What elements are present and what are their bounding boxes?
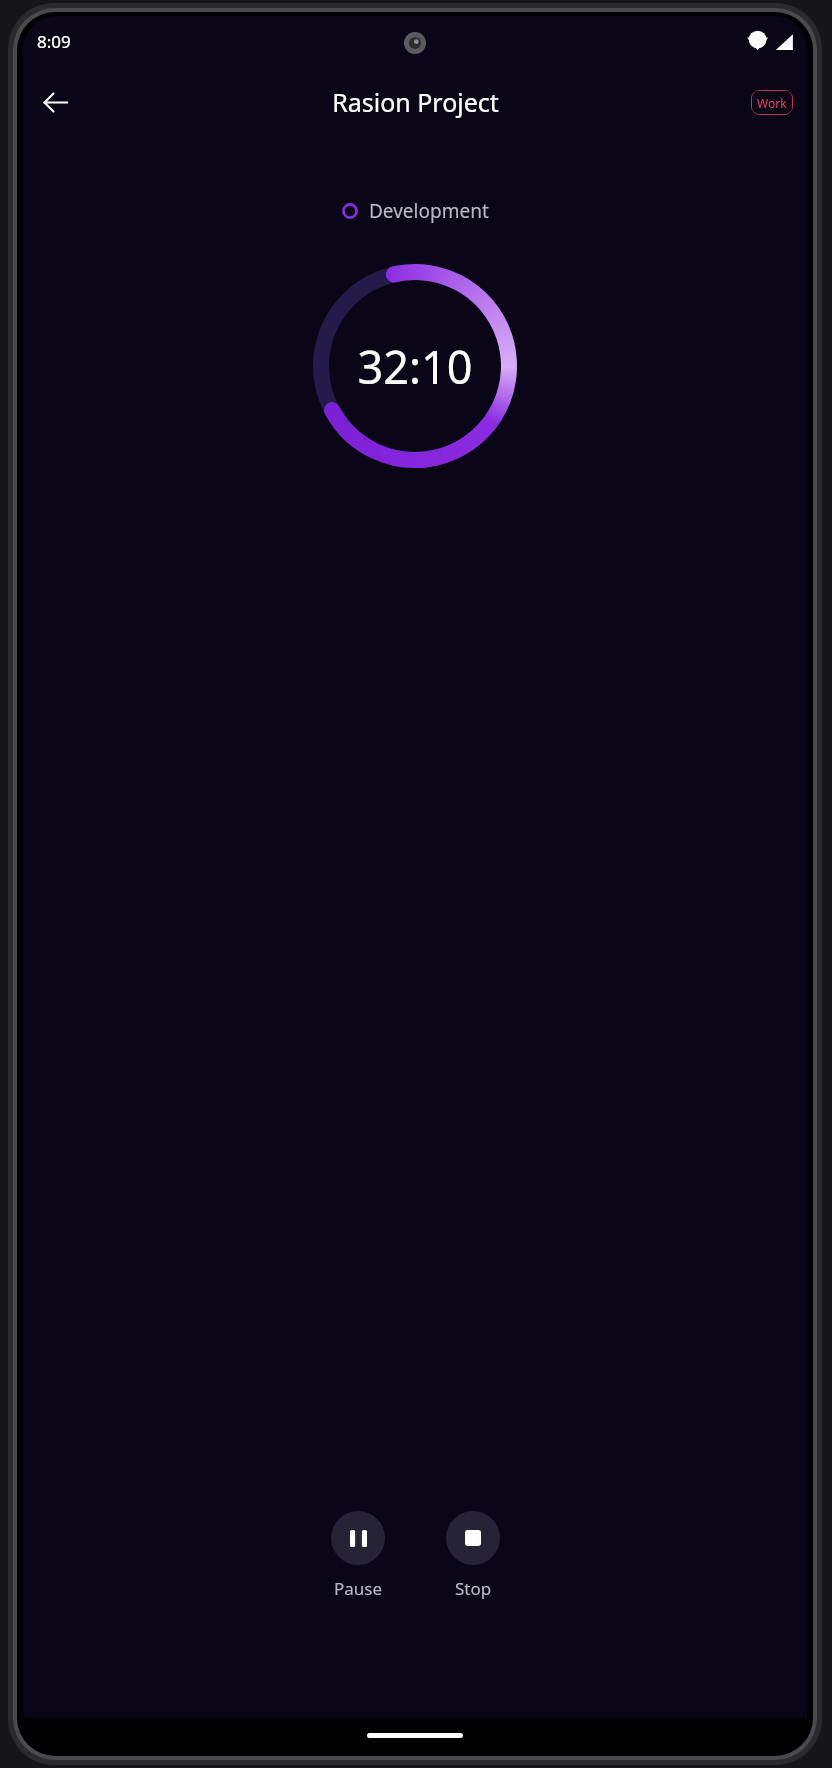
button[interactable]: Pause bbox=[327, 1511, 389, 1600]
staticText: Development bbox=[369, 198, 489, 224]
button[interactable]: Work bbox=[751, 90, 793, 115]
staticText: Rasion Project bbox=[332, 85, 499, 119]
button[interactable]: Stop bbox=[442, 1511, 504, 1600]
button[interactable]: Back bbox=[31, 78, 79, 126]
staticText: 32:10 bbox=[357, 336, 473, 397]
staticText: 8:09 bbox=[37, 30, 71, 53]
other: Stop bbox=[446, 1511, 500, 1565]
staticText: Stop bbox=[455, 1577, 492, 1600]
button[interactable]: Development bbox=[23, 198, 807, 224]
staticText: Work bbox=[757, 95, 787, 111]
staticText: Pause bbox=[334, 1577, 383, 1600]
other: Pause bbox=[331, 1511, 385, 1565]
